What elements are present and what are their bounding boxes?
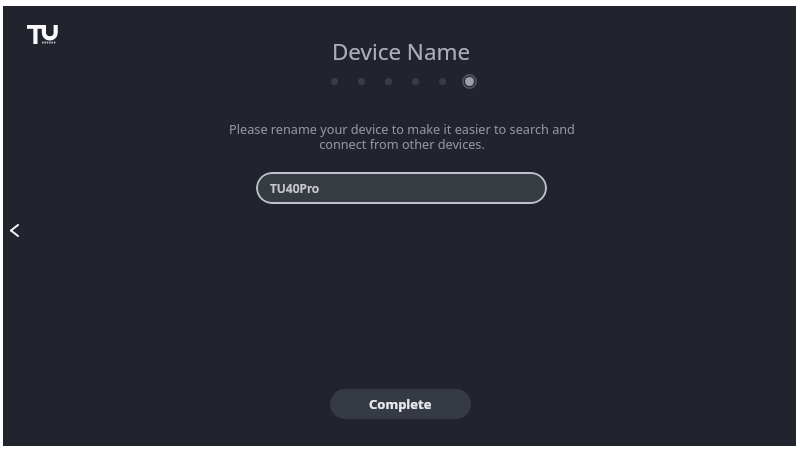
button[interactable]: Step (402, 68, 429, 95)
button[interactable]: Back (0, 212, 32, 248)
button[interactable]: Complete (330, 389, 471, 419)
staticText: Device Name (332, 36, 471, 67)
button[interactable]: Current step (456, 68, 483, 95)
staticText: TU40Pro (270, 180, 320, 196)
staticText: Complete (369, 395, 432, 413)
button[interactable]: TU40Pro (256, 172, 547, 204)
button[interactable]: Step (321, 68, 348, 95)
button[interactable]: Step (348, 68, 375, 95)
button[interactable]: Step (429, 68, 456, 95)
staticText: Please rename your device to make it eas… (229, 120, 575, 152)
button[interactable]: Step (375, 68, 402, 95)
other: TU logo (27, 25, 60, 45)
